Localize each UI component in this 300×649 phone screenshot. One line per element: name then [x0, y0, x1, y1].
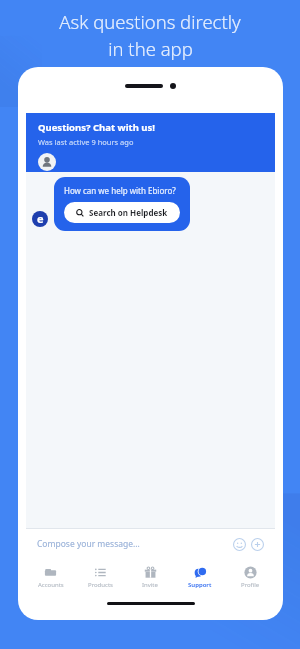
staticText: Invite [142, 581, 158, 589]
staticText: Ask questions directly [59, 9, 241, 34]
staticText: Questions? Chat with us! [38, 121, 155, 134]
button[interactable]: How can we help with Ebioro? [54, 177, 190, 231]
button[interactable]: Products [75, 559, 125, 595]
staticText: How can we help with Ebioro? [64, 185, 176, 196]
button[interactable]: Emoji [233, 538, 246, 551]
staticText: Was last active 9 hours ago [38, 137, 134, 147]
staticText: Support [188, 581, 212, 589]
staticText: e [37, 211, 44, 226]
staticText: Products [88, 581, 113, 589]
button[interactable]: Profile [225, 559, 275, 595]
button[interactable]: Compose your message... [26, 529, 275, 559]
button[interactable]: Invite [125, 559, 175, 595]
staticText: Search on Helpdesk [89, 207, 168, 218]
button[interactable]: Add attachment [251, 538, 264, 551]
button[interactable]: Accounts [26, 559, 75, 595]
staticText: Compose your message... [37, 538, 140, 550]
staticText: in the app [108, 36, 193, 61]
button[interactable]: Questions? Chat with us! [26, 113, 275, 172]
staticText: Profile [241, 581, 260, 589]
staticText: Accounts [38, 581, 64, 589]
button[interactable]: Support [175, 559, 225, 595]
button[interactable]: Search on Helpdesk [64, 202, 180, 223]
